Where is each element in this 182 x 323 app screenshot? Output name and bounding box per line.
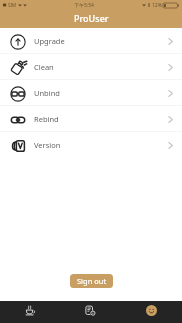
button[interactable]: Brew [0,301,60,323]
staticText: ProUser [74,12,109,24]
staticText: SIM [8,2,17,8]
staticText: Sign out [77,276,107,286]
staticText: Rebind [34,114,59,124]
button[interactable]: Records [60,301,121,323]
button[interactable]: Sign out [70,274,113,288]
staticText: Unbind [34,88,60,98]
staticText: Upgrade [34,36,65,46]
staticText: Version [34,140,61,150]
button[interactable]: Rebind [0,106,182,132]
button[interactable]: Profile [121,301,182,323]
staticText: 12% [152,2,162,9]
button[interactable]: Upgrade [0,28,182,54]
button[interactable]: Version [0,132,182,158]
staticText: Clean [34,62,54,72]
button[interactable]: Unbind [0,80,182,106]
staticText: 下午5:54 [74,2,94,9]
button[interactable]: Clean [0,54,182,80]
